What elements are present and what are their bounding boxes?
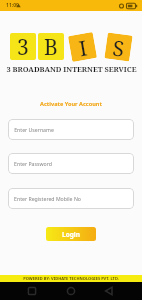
staticText: S — [111, 33, 127, 61]
staticText: 11:09 — [6, 2, 19, 9]
button[interactable]: Back — [100, 282, 118, 300]
button[interactable]: Login — [46, 227, 96, 241]
staticText: 3 — [17, 33, 29, 60]
staticText: 3 BROADBAND INTERNET SERVICE — [6, 64, 137, 74]
staticText: Enter Registered Mobile No — [14, 195, 81, 202]
button[interactable]: Enter Username — [8, 119, 134, 140]
staticText: Enter Password — [14, 160, 52, 167]
staticText: Enter Username — [14, 126, 54, 133]
button[interactable]: Enter Password — [8, 153, 134, 174]
staticText: Login — [62, 230, 80, 239]
button[interactable]: Recents — [23, 282, 41, 300]
staticText: POWERED BY: VIDHATE TECHNOLOGIES PVT. LT… — [23, 276, 119, 281]
staticText: B — [44, 33, 58, 60]
button[interactable]: Enter Registered Mobile No — [8, 188, 134, 209]
button[interactable]: Home — [62, 282, 80, 300]
staticText: I — [77, 33, 89, 60]
staticText: Activate Your Account — [40, 100, 102, 108]
